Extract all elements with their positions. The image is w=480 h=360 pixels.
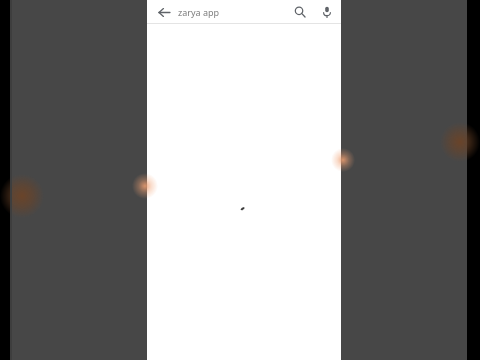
button[interactable]: Voice search <box>316 1 338 23</box>
staticText: zarya app <box>178 6 220 18</box>
button[interactable]: zarya app <box>178 0 289 24</box>
button[interactable]: Search <box>289 1 311 23</box>
button[interactable]: Back <box>154 2 174 22</box>
